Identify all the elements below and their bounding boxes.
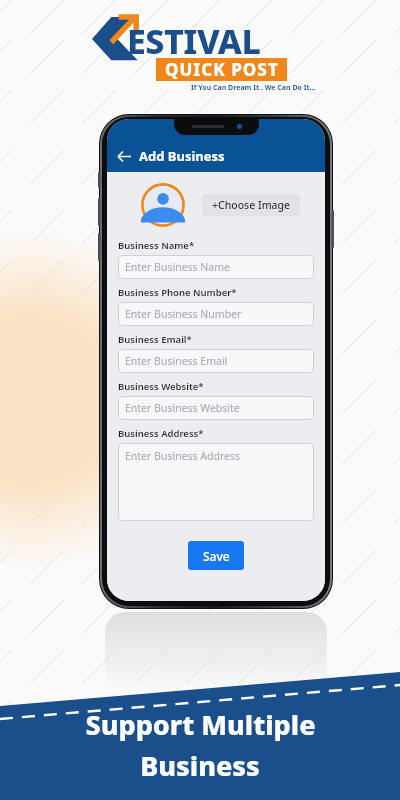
button[interactable]: Enter Business Address bbox=[118, 443, 314, 521]
staticText: Add Business bbox=[139, 147, 225, 165]
staticText: Save bbox=[203, 548, 230, 564]
button[interactable]: Save bbox=[188, 541, 244, 570]
button[interactable]: Enter Business Name bbox=[118, 255, 314, 279]
staticText: If You Can Dream It.. We Can Do It... bbox=[191, 83, 316, 93]
staticText: Support Multiple bbox=[85, 706, 316, 743]
button[interactable]: Back bbox=[117, 147, 225, 165]
staticText: Business Email* bbox=[118, 333, 192, 346]
button[interactable]: Enter Business Email bbox=[118, 349, 314, 373]
staticText: Business Phone Number* bbox=[118, 286, 237, 299]
staticText: QUICK POST bbox=[165, 58, 279, 81]
staticText: Enter Business Website bbox=[125, 401, 240, 415]
button[interactable]: Enter Business Number bbox=[118, 302, 314, 326]
button[interactable]: Profile image bbox=[141, 183, 185, 227]
button[interactable]: +Choose Image bbox=[202, 194, 300, 216]
staticText: Business bbox=[140, 747, 260, 784]
staticText: Enter Business Name bbox=[125, 260, 230, 274]
staticText: Enter Business Address bbox=[125, 449, 241, 463]
staticText: Business Name* bbox=[118, 239, 195, 252]
button[interactable]: Enter Business Website bbox=[118, 396, 314, 420]
staticText: +Choose Image bbox=[212, 198, 291, 212]
staticText: ESTIVAL bbox=[127, 18, 261, 64]
staticText: Business Address* bbox=[118, 427, 204, 440]
staticText: Enter Business Number bbox=[125, 307, 242, 321]
staticText: Business Website* bbox=[118, 380, 204, 393]
staticText: Enter Business Email bbox=[125, 354, 228, 368]
